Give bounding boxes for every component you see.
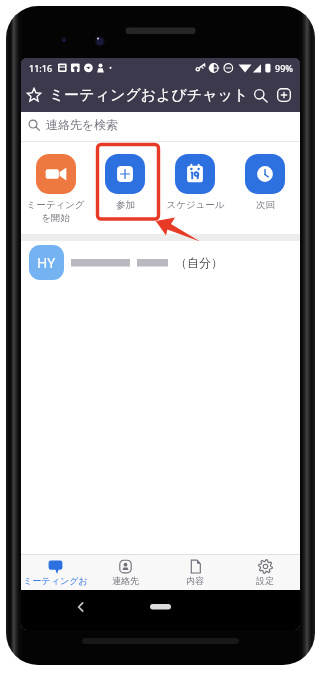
button[interactable]: Search [249,78,271,112]
staticText: 11:16 [29,62,53,74]
button[interactable]: 参加 [90,142,160,234]
staticText: スケジュール [166,199,225,211]
button[interactable]: Starred [21,78,47,112]
staticText: 次回 [256,199,275,211]
staticText: （自分） [175,255,223,270]
button[interactable]: 設定 [230,555,300,590]
staticText: ミーティングおよびチャット [49,86,249,105]
staticText: 参加 [116,199,135,211]
staticText: 99% [275,62,293,74]
button[interactable]: ミーティング を開始 [21,142,90,234]
button[interactable]: スケジュール [160,142,230,234]
staticText: HY [37,253,56,272]
button[interactable]: HY [21,241,300,284]
button[interactable]: New meeting [271,78,297,112]
staticText: 連絡先 [112,575,139,586]
button[interactable]: 連絡先 [90,555,160,590]
staticText: ミーティングお [23,575,88,586]
button[interactable]: ミーティングお [21,555,90,590]
staticText: ミーティング を開始 [26,199,85,224]
button[interactable]: 連絡先を検索 [21,112,300,141]
staticText: 設定 [256,575,274,586]
button[interactable]: 次回 [230,142,300,234]
staticText: 連絡先を検索 [46,117,119,132]
button[interactable]: 内容 [160,555,230,590]
staticText: 内容 [186,575,204,586]
